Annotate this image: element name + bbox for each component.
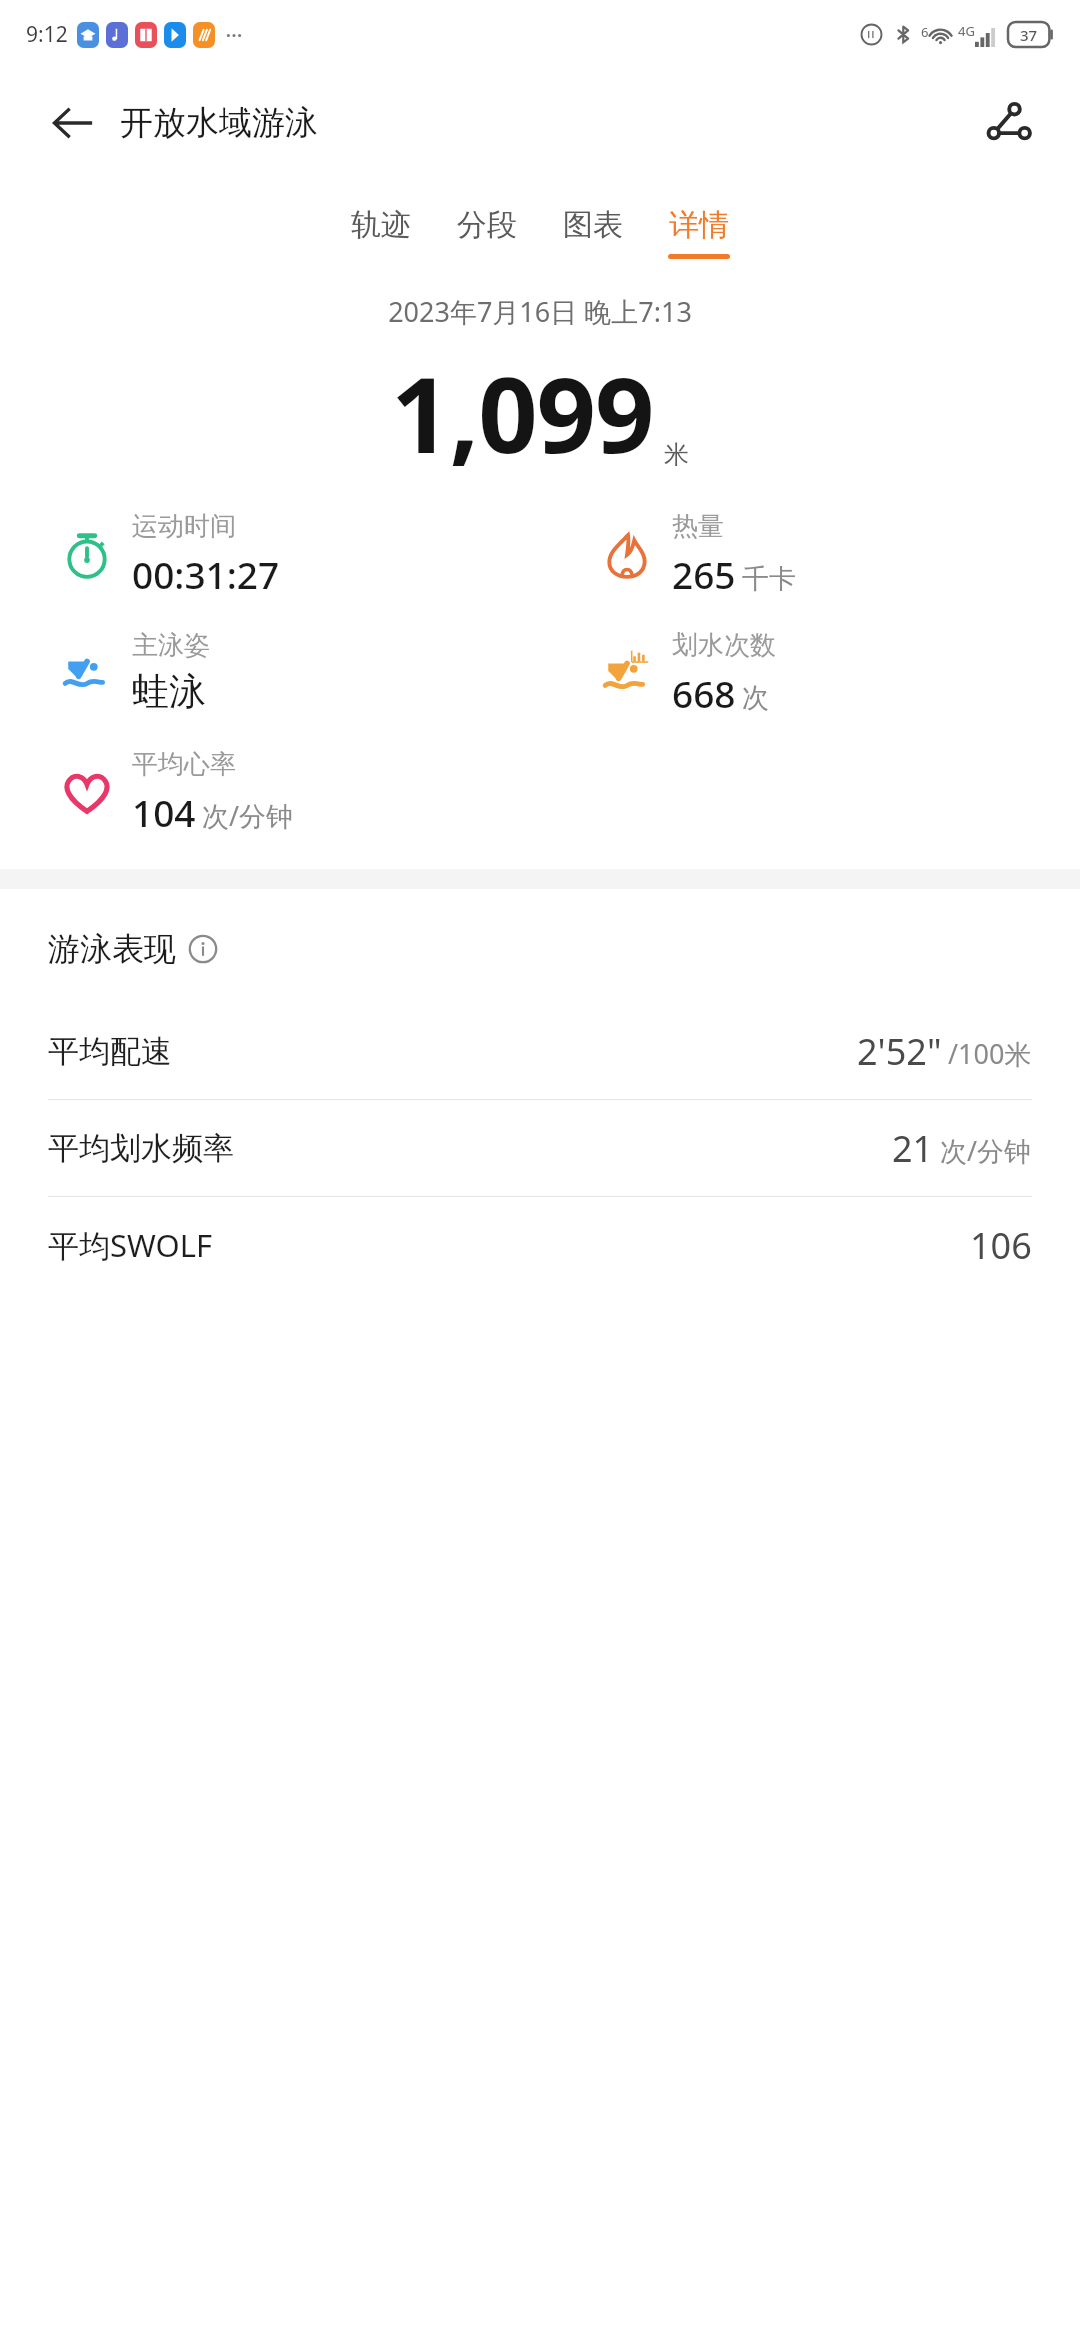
staticText: 平均心率 [132, 748, 236, 781]
staticText: 平均配速 [48, 1032, 172, 1071]
staticText: 米 [664, 439, 689, 470]
staticText: 图表 [563, 206, 623, 244]
staticText: 9:12 [26, 20, 68, 49]
button[interactable]: 主泳姿 [0, 629, 540, 715]
button[interactable]: 分享 [974, 88, 1044, 158]
staticText: 平均SWOLF [48, 1224, 213, 1266]
button[interactable]: 划水次数 [540, 629, 1080, 718]
button[interactable]: 图表 [540, 202, 646, 263]
staticText: 热量 [672, 510, 724, 543]
staticText: 668 [672, 668, 736, 718]
staticText: 轨迹 [351, 206, 411, 244]
button[interactable]: 返回 [40, 91, 104, 155]
staticText: 开放水域游泳 [120, 102, 318, 144]
button[interactable]: 平均配速 [0, 1003, 1080, 1099]
staticText: 1,099 [391, 342, 654, 484]
staticText: 平均划水频率 [48, 1129, 234, 1168]
staticText: 蛙泳 [132, 668, 206, 715]
staticText: 104 [132, 787, 196, 837]
staticText: 265 [672, 549, 736, 599]
staticText: 106 [970, 1221, 1032, 1270]
staticText: 00:31:27 [132, 549, 280, 599]
staticText: 分段 [457, 206, 517, 244]
staticText: 4G [958, 22, 975, 40]
staticText: /100米 [948, 1035, 1032, 1072]
staticText: 次 [742, 681, 769, 715]
staticText: 划水次数 [672, 629, 776, 662]
button[interactable]: 平均心率 [0, 748, 540, 837]
button[interactable]: 平均SWOLF [0, 1197, 1080, 1293]
button[interactable]: 游泳表现 [0, 929, 1080, 969]
staticText: 次/分钟 [202, 797, 294, 834]
button[interactable]: 轨迹 [328, 202, 434, 263]
staticText: 2'52" [857, 1027, 942, 1076]
button[interactable]: 热量 [540, 510, 1080, 599]
button[interactable]: 分段 [434, 202, 540, 263]
staticText: 37 [1020, 25, 1038, 45]
staticText: 运动时间 [132, 510, 236, 543]
staticText: 千卡 [742, 562, 796, 596]
staticText: 2023年7月16日 晚上7:13 [0, 293, 1080, 330]
staticText: 次/分钟 [940, 1132, 1032, 1169]
button[interactable]: 详情 [646, 202, 752, 263]
staticText: 游泳表现 [48, 929, 176, 969]
button[interactable]: 平均划水频率 [0, 1100, 1080, 1196]
button[interactable]: 运动时间 [0, 510, 540, 599]
staticText: 6 [921, 23, 929, 41]
staticText: 21 [892, 1124, 934, 1173]
staticText: 详情 [669, 206, 729, 244]
staticText: 主泳姿 [132, 629, 210, 662]
